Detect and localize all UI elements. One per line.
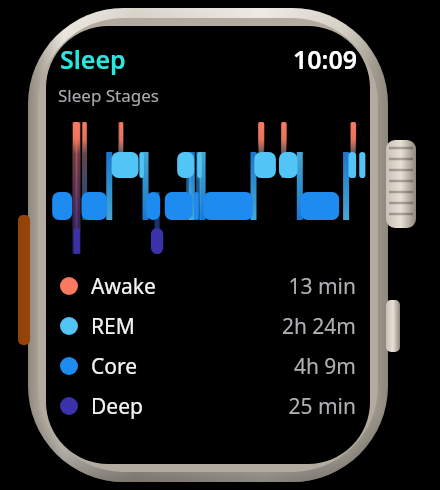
button[interactable]: Deep xyxy=(46,386,370,426)
staticText: Core xyxy=(91,352,138,381)
staticText: Awake xyxy=(91,272,156,301)
staticText: 13 min xyxy=(288,272,356,301)
button[interactable]: REM xyxy=(46,306,370,346)
staticText: 10:09 xyxy=(293,42,358,76)
staticText: 4h 9m xyxy=(293,352,356,381)
button[interactable]: Awake xyxy=(46,266,370,306)
button[interactable]: Sleep xyxy=(58,42,128,76)
staticText: Sleep Stages xyxy=(58,84,159,107)
staticText: Sleep xyxy=(60,42,126,76)
staticText: Deep xyxy=(91,392,143,421)
staticText: 2h 24m xyxy=(281,312,356,341)
staticText: REM xyxy=(91,312,135,341)
staticText: 25 min xyxy=(288,392,356,421)
button[interactable]: Core xyxy=(46,346,370,386)
button[interactable]: Sleep stages chart xyxy=(46,117,370,258)
